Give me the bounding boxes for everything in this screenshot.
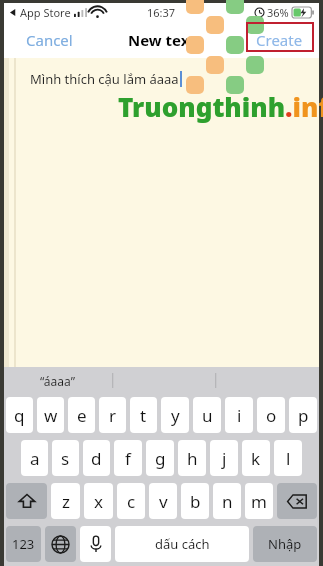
staticText: Nhập [268,535,302,553]
button[interactable]: Cancel [4,23,95,57]
staticText: a [30,447,40,470]
staticText: “áaaa” [40,373,75,389]
staticText: m [251,490,267,513]
staticText: y [171,404,180,427]
staticText: i [237,404,242,427]
button[interactable]: o [257,397,285,433]
staticText: New text [128,30,196,50]
button[interactable]: p [289,397,317,433]
staticText: s [61,447,70,470]
staticText: b [190,490,201,513]
button[interactable]: h [178,440,206,476]
staticText: 16:37 [147,5,176,20]
staticText: l [286,447,291,470]
staticText: e [77,404,87,427]
button[interactable]: Create [240,23,319,57]
button[interactable]: d [83,440,110,476]
button[interactable]: q [6,397,33,433]
button[interactable]: w [37,397,64,433]
staticText: w [44,404,58,427]
staticText: c [127,490,136,513]
button[interactable]: u [193,397,221,433]
button[interactable]: n [213,483,241,519]
staticText: Cancel [26,30,73,50]
staticText: App Store [20,5,71,20]
staticText: z [62,490,70,513]
button[interactable]: Backspace [277,483,317,519]
button[interactable]: a [21,440,48,476]
button[interactable]: r [99,397,126,433]
button[interactable]: v [149,483,177,519]
button[interactable]: i [225,397,253,433]
button[interactable]: x [84,483,113,519]
staticText: 123 [12,535,35,553]
staticText: r [109,404,117,427]
staticText: t [140,404,147,427]
staticText: dấu cách [155,535,210,553]
button[interactable]: 123 [6,526,41,562]
staticText: n [222,490,233,513]
button[interactable]: f [114,440,142,476]
staticText: o [266,404,277,427]
staticText: v [159,490,168,513]
staticText: q [14,404,25,427]
staticText: d [91,447,102,470]
staticText: Truongthinh.info [118,89,323,124]
button[interactable]: j [210,440,238,476]
button[interactable]: c [117,483,145,519]
button[interactable]: k [242,440,270,476]
staticText: Create [256,30,303,50]
button[interactable]: z [51,483,80,519]
staticText: g [155,447,166,470]
staticText: u [202,404,213,427]
staticText: f [125,447,131,470]
button[interactable]: Dictation [80,526,111,562]
button[interactable]: Shift [6,483,47,519]
staticText: x [94,490,103,513]
button[interactable]: l [274,440,302,476]
button[interactable]: m [245,483,273,519]
staticText: Mình thích cậu lắm áaaa [30,70,179,88]
button[interactable]: b [181,483,209,519]
button[interactable]: e [68,397,95,433]
staticText: h [187,447,198,470]
button[interactable]: t [130,397,157,433]
button[interactable]: Change keyboard language [45,526,76,562]
button[interactable]: Nhập [253,526,317,562]
button[interactable]: y [161,397,189,433]
button[interactable]: g [146,440,174,476]
button[interactable]: dấu cách [115,526,249,562]
staticText: 36% [267,5,289,20]
staticText: p [298,404,309,427]
staticText: k [251,447,261,470]
button[interactable]: s [52,440,79,476]
staticText: j [222,447,227,470]
